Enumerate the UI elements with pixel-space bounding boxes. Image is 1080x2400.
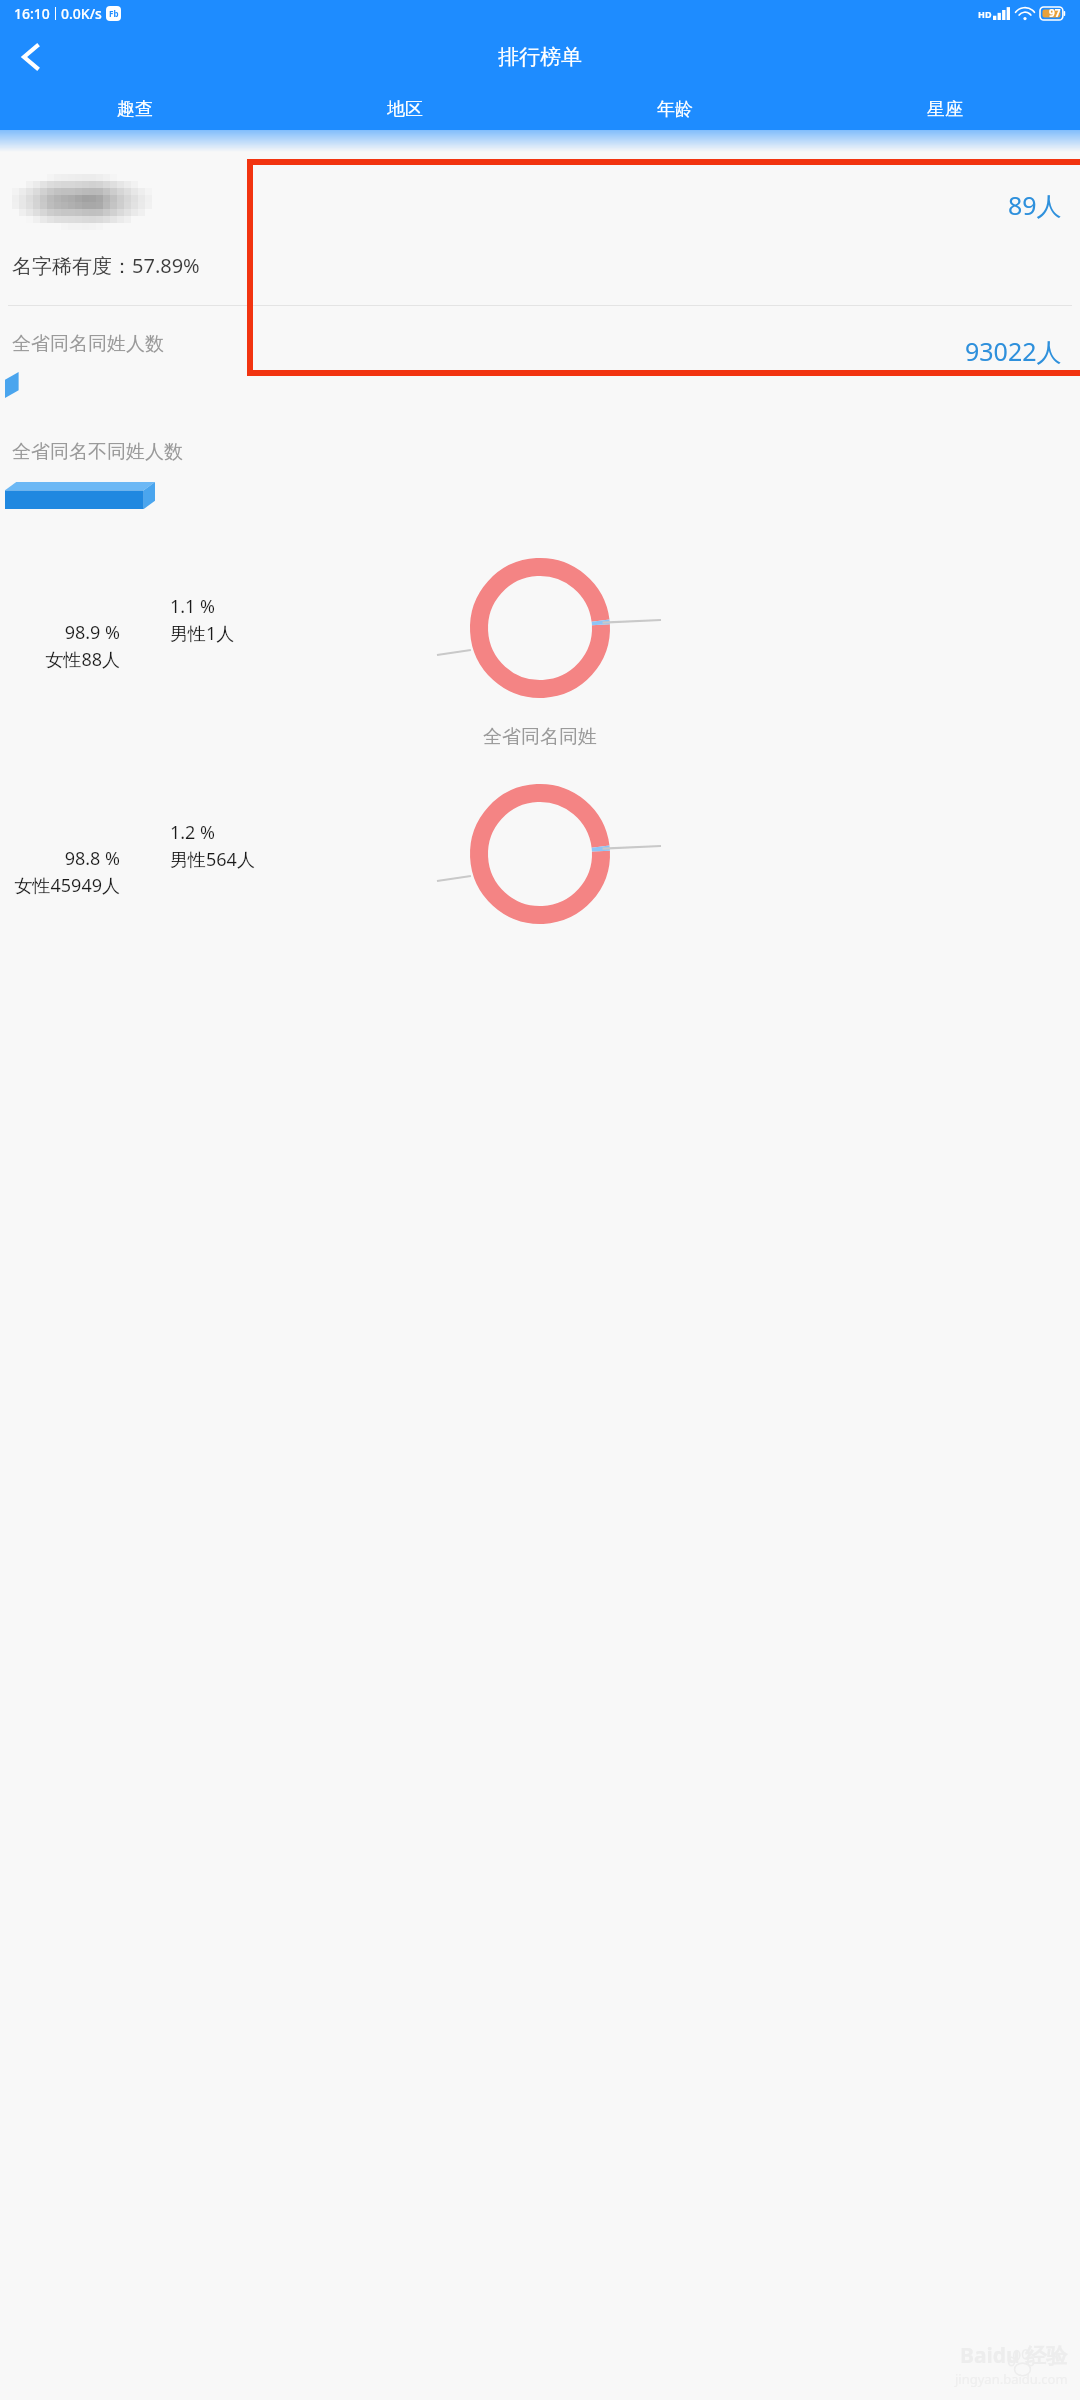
staticText: 89人 <box>1008 188 1062 222</box>
staticText: 93022人 <box>965 334 1062 368</box>
staticText: jingyan.baidu.com <box>955 2370 1068 2388</box>
button[interactable]: 趣查 <box>0 88 270 130</box>
staticText: 排行榜单 <box>498 44 582 70</box>
staticText: 男性1人 <box>170 621 235 646</box>
staticText: 全省同名同姓人数 <box>12 332 164 356</box>
staticText: 1.2 % <box>170 820 216 845</box>
staticText: 1.1 % <box>170 594 216 619</box>
staticText: 全省同名同姓 <box>483 725 597 749</box>
staticText: HD <box>978 8 992 20</box>
staticText: Fb <box>109 8 119 19</box>
staticText: 星座 <box>927 98 963 121</box>
staticText: 98.8 % <box>64 846 120 871</box>
staticText: 男性564人 <box>170 847 255 872</box>
staticText: 女性45949人 <box>14 873 120 898</box>
staticText: 年龄 <box>657 98 693 121</box>
staticText: 98.9 % <box>64 620 120 645</box>
button[interactable]: 地区 <box>270 88 540 130</box>
staticText: 地区 <box>387 98 423 121</box>
staticText: 名字稀有度：57.89% <box>12 252 200 279</box>
button[interactable]: 年龄 <box>540 88 810 130</box>
staticText: 趣查 <box>117 98 153 121</box>
staticText: 女性88人 <box>45 647 120 672</box>
button[interactable]: 星座 <box>810 88 1080 130</box>
staticText: 16:10 <box>14 4 50 23</box>
staticText: 0.0K/s <box>61 4 102 23</box>
staticText: 全省同名不同姓人数 <box>12 440 183 464</box>
button[interactable]: Back <box>6 33 54 81</box>
staticText: 97 <box>1049 6 1061 20</box>
staticText: Baidu 经验 <box>960 2341 1068 2370</box>
